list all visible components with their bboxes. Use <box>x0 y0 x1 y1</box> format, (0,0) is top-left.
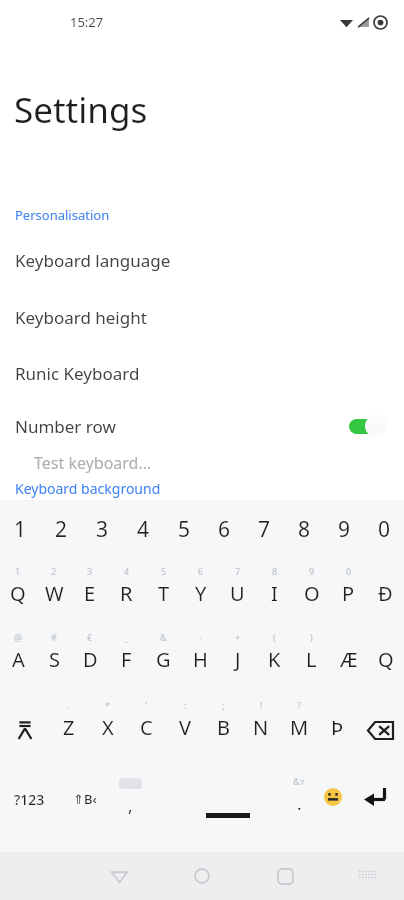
button[interactable]: Emoji <box>312 768 354 830</box>
staticText: U <box>230 580 245 607</box>
button[interactable]: Keyboard language <box>0 243 404 277</box>
staticText: 7 <box>258 515 271 544</box>
staticText: 4 <box>137 515 150 544</box>
staticText: W <box>45 580 64 607</box>
button[interactable]: Æ <box>330 624 367 690</box>
button[interactable]: 8 <box>284 500 324 558</box>
button[interactable]: _ <box>108 624 145 690</box>
staticText: ' <box>145 699 148 711</box>
button[interactable]: 6 <box>182 558 219 624</box>
button[interactable]: 2 <box>41 500 82 558</box>
staticText: G <box>156 646 171 673</box>
button[interactable]: 7 <box>219 558 256 624</box>
staticText: . <box>67 699 70 711</box>
staticText: ?123 <box>14 790 45 809</box>
button[interactable]: Backspace <box>356 692 404 758</box>
button[interactable]: - <box>182 624 219 690</box>
button[interactable]: * <box>88 692 127 758</box>
button[interactable]: Đ <box>367 558 404 624</box>
button[interactable]: Test keyboard… <box>14 441 390 484</box>
staticText: Settings <box>14 86 148 134</box>
staticText: ; <box>222 699 225 711</box>
button[interactable]: & <box>145 624 182 690</box>
button[interactable]: &⁊ <box>278 768 320 830</box>
button[interactable]: 7 <box>244 500 284 558</box>
button[interactable]: # <box>36 624 72 690</box>
button[interactable]: 0 <box>330 558 367 624</box>
button[interactable]: 9 <box>293 558 330 624</box>
button[interactable]: Space <box>152 768 304 830</box>
staticText: Number row <box>15 415 116 438</box>
button[interactable]: : <box>166 692 204 758</box>
staticText: 3 <box>96 515 109 544</box>
button[interactable]: 1 <box>0 558 36 624</box>
button[interactable]: 2 <box>36 558 72 624</box>
staticText: Keyboard height <box>15 306 147 329</box>
staticText: _ <box>125 631 129 643</box>
button[interactable]: Enter <box>352 768 398 830</box>
button[interactable]: 9 <box>324 500 364 558</box>
button[interactable]: ? <box>280 692 318 758</box>
button[interactable]: 3 <box>82 500 123 558</box>
button[interactable]: 4 <box>108 558 145 624</box>
staticText: Q <box>378 646 394 673</box>
staticText: S <box>49 646 60 673</box>
button[interactable]: Shift <box>0 692 49 758</box>
button[interactable]: Switch keyboard <box>350 852 384 900</box>
staticText: Q <box>10 580 26 607</box>
button[interactable]: ' <box>127 692 166 758</box>
staticText: Æ <box>340 646 358 673</box>
button[interactable]: + <box>219 624 256 690</box>
button[interactable]: Keyboard height <box>0 300 404 334</box>
staticText: 4 <box>124 565 130 577</box>
staticText: B <box>217 714 230 741</box>
staticText: R <box>120 580 133 607</box>
staticText: @ <box>14 631 23 643</box>
staticText: N <box>253 714 269 741</box>
button[interactable]: 3 <box>72 558 108 624</box>
button[interactable]: € <box>72 624 108 690</box>
staticText: J <box>235 646 241 673</box>
staticText: O <box>304 580 320 607</box>
staticText: & <box>160 631 167 643</box>
button[interactable]: , <box>104 768 156 830</box>
staticText: 0 <box>378 515 391 544</box>
button[interactable]: 4 <box>123 500 164 558</box>
button[interactable]: Runic Keyboard <box>0 356 404 390</box>
staticText: 1 <box>15 565 21 577</box>
button[interactable]: Number row <box>0 409 404 443</box>
staticText: P <box>342 580 355 607</box>
button[interactable]: Recent apps <box>268 852 302 900</box>
staticText: Personalisation <box>15 206 110 224</box>
button[interactable]: ( <box>256 624 293 690</box>
button[interactable]: Home <box>185 852 219 900</box>
button[interactable]: Back <box>102 852 136 900</box>
staticText: : <box>184 699 187 711</box>
button[interactable]: 8 <box>256 558 293 624</box>
staticText: 5 <box>178 515 191 544</box>
staticText: * <box>105 699 110 711</box>
staticText: 7 <box>235 565 241 577</box>
button[interactable]: ; <box>204 692 242 758</box>
button[interactable]: ! <box>242 692 280 758</box>
staticText: T <box>158 580 170 607</box>
button[interactable]: 1 <box>0 500 41 558</box>
staticText: 2 <box>51 565 57 577</box>
button[interactable]: 0 <box>364 500 404 558</box>
staticText: ! <box>260 699 263 711</box>
button[interactable]: Change language <box>58 768 112 830</box>
button[interactable]: Symbols <box>2 768 56 830</box>
staticText: 3 <box>87 565 93 577</box>
staticText: ) <box>310 631 313 643</box>
staticText: ? <box>297 699 301 711</box>
staticText: X <box>102 714 114 741</box>
button[interactable]: 5 <box>164 500 204 558</box>
button[interactable]: ) <box>293 624 330 690</box>
button[interactable]: 6 <box>204 500 244 558</box>
button[interactable]: @ <box>0 624 36 690</box>
button[interactable]: . <box>49 692 88 758</box>
button[interactable]: Þ <box>318 692 356 758</box>
button[interactable]: Q <box>367 624 404 690</box>
staticText: # <box>51 631 57 643</box>
button[interactable]: 5 <box>145 558 182 624</box>
